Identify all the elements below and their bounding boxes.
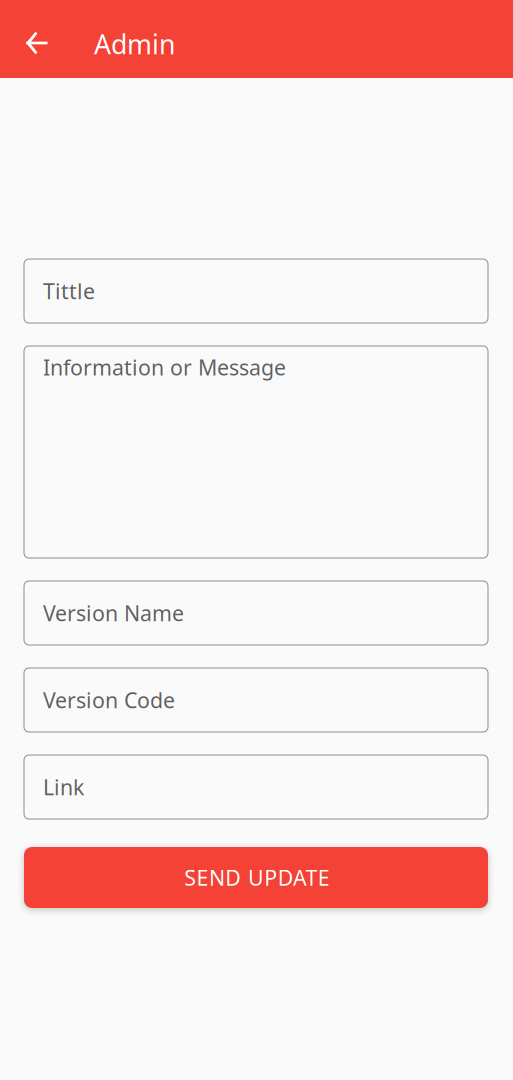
staticText: Version Code [43, 686, 175, 714]
staticText: Version Name [43, 599, 184, 627]
staticText: Information or Message [43, 353, 286, 381]
staticText: Admin [94, 26, 175, 62]
staticText: Link [43, 773, 84, 801]
staticText: SEND UPDATE [184, 863, 330, 892]
button[interactable]: SEND UPDATE [24, 847, 488, 908]
staticText: Tittle [43, 277, 95, 305]
button[interactable]: Back [13, 10, 61, 67]
